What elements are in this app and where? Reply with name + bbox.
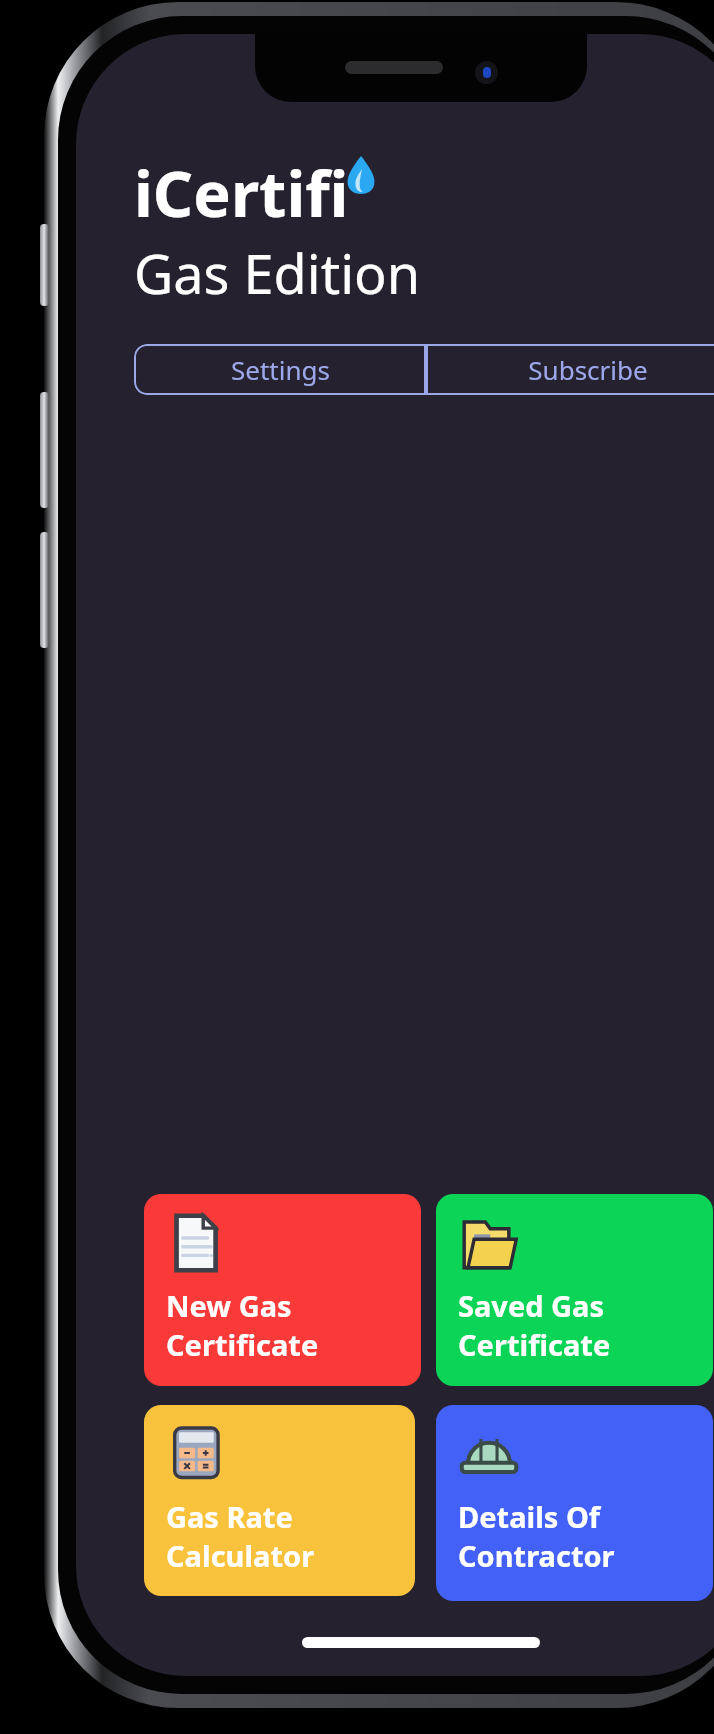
staticText: Certificate xyxy=(458,1325,611,1364)
staticText: Details Of xyxy=(458,1497,601,1536)
staticText: Gas Rate xyxy=(166,1497,293,1536)
staticText: Certificate xyxy=(166,1325,319,1364)
button[interactable]: New Gas Certificate xyxy=(144,1194,421,1386)
button[interactable]: Subscribe xyxy=(426,344,714,395)
staticText: Saved Gas xyxy=(458,1286,605,1325)
staticText: Calculator xyxy=(166,1536,315,1575)
button[interactable]: Settings xyxy=(134,344,426,395)
staticText: Subscribe xyxy=(528,352,648,387)
button[interactable]: Gas Rate Calculator xyxy=(144,1405,415,1596)
button[interactable]: Details Of Contractor xyxy=(436,1405,713,1601)
staticText: Settings xyxy=(231,352,330,387)
staticText: iCertifi xyxy=(134,150,349,236)
staticText: New Gas xyxy=(166,1286,292,1325)
staticText: Gas Edition xyxy=(134,236,421,310)
staticText: Contractor xyxy=(458,1536,615,1575)
button[interactable]: Saved Gas Certificate xyxy=(436,1194,713,1386)
